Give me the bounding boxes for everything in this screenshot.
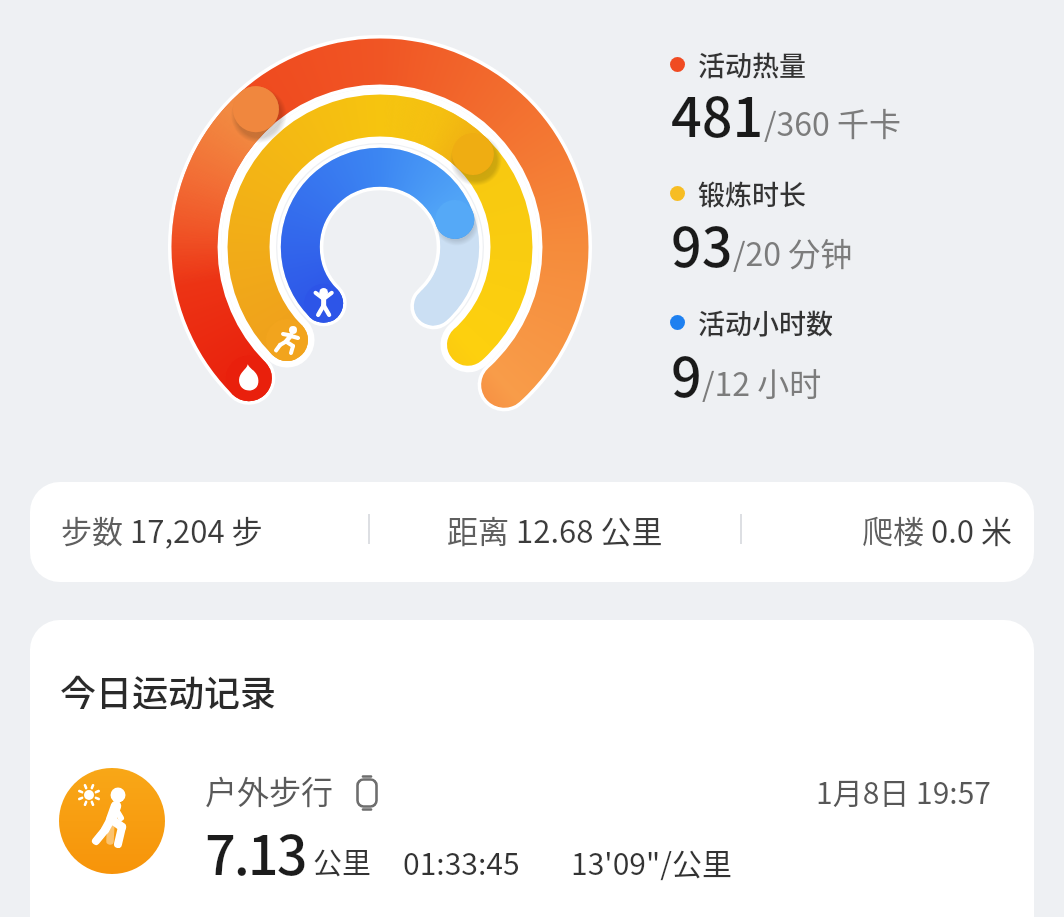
staticText: 1月8日 19:57 — [816, 769, 991, 812]
button[interactable]: 户外步行 — [30, 748, 1034, 898]
staticText: /360 千卡 — [764, 99, 901, 145]
staticText: /12 小时 — [702, 359, 822, 405]
staticText: 01:33:45 — [403, 840, 520, 883]
staticText: 9 — [671, 334, 702, 412]
staticText: 93 — [671, 204, 733, 282]
staticText: 12.68 公里 — [516, 507, 663, 552]
staticText: 锻炼时长 — [698, 174, 806, 213]
staticText: 步数 — [61, 507, 130, 552]
staticText: /20 分钟 — [733, 229, 853, 275]
staticText: 活动热量 — [698, 45, 806, 84]
staticText: 0.0 米 — [931, 507, 1012, 552]
staticText: 481 — [671, 74, 764, 152]
staticText: 爬楼 — [862, 507, 931, 552]
button[interactable]: 步数 — [30, 482, 1034, 582]
staticText: 7.13 — [205, 812, 306, 888]
staticText: 公里 — [313, 840, 372, 882]
staticText: 13'09"/公里 — [571, 840, 732, 883]
staticText: 17,204 步 — [130, 507, 263, 552]
staticText: 今日运动记录 — [60, 665, 277, 709]
staticText: 户外步行 — [205, 767, 334, 811]
staticText: 活动小时数 — [698, 303, 833, 342]
staticText: 距离 — [447, 507, 516, 552]
